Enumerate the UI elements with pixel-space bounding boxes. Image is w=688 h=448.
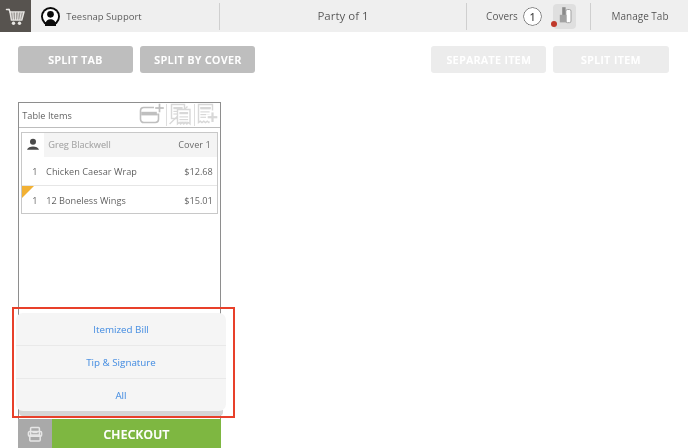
staticText: Manage Tab bbox=[611, 9, 669, 23]
staticText: 1 bbox=[529, 10, 536, 24]
staticText: CHECKOUT bbox=[103, 426, 170, 442]
button[interactable]: 1 bbox=[21, 186, 218, 214]
button[interactable]: 1 bbox=[21, 157, 218, 185]
button[interactable]: Add receipt bbox=[195, 102, 221, 128]
button[interactable]: SPLIT ITEM bbox=[553, 46, 669, 73]
button[interactable]: Covers bbox=[467, 0, 542, 32]
button[interactable]: All bbox=[16, 379, 226, 411]
button[interactable]: Itemized Bill bbox=[16, 313, 226, 345]
staticText: Table Items bbox=[22, 109, 72, 122]
button[interactable]: SPLIT BY COVER bbox=[140, 46, 255, 73]
button[interactable]: Greg Blackwell bbox=[21, 132, 218, 157]
staticText: Covers bbox=[486, 9, 518, 23]
button[interactable]: SEPARATE ITEM bbox=[431, 46, 546, 73]
staticText: 12 Boneless Wings bbox=[46, 194, 126, 207]
button[interactable]: Tip & Signature bbox=[16, 346, 226, 378]
staticText: All bbox=[115, 389, 127, 402]
button[interactable]: Add card bbox=[138, 102, 166, 128]
staticText: $12.68 bbox=[184, 165, 213, 178]
button[interactable]: Cart bbox=[0, 0, 31, 32]
button[interactable]: Manage Tab bbox=[591, 0, 688, 32]
button[interactable]: Split receipt bbox=[167, 102, 194, 128]
staticText: Party of 1 bbox=[317, 8, 369, 24]
staticText: SPLIT ITEM bbox=[581, 53, 641, 67]
button[interactable]: SPLIT TAB bbox=[18, 46, 133, 73]
button[interactable]: Print bbox=[18, 419, 52, 448]
staticText: 1 bbox=[32, 165, 38, 178]
button[interactable]: Split check bbox=[551, 3, 577, 29]
staticText: SPLIT TAB bbox=[48, 53, 103, 67]
staticText: Chicken Caesar Wrap bbox=[46, 165, 137, 178]
staticText: SPLIT BY COVER bbox=[154, 53, 242, 67]
staticText: Cover 1 bbox=[178, 138, 211, 151]
staticText: Itemized Bill bbox=[93, 323, 149, 336]
staticText: Greg Blackwell bbox=[48, 138, 111, 151]
staticText: $15.01 bbox=[184, 194, 213, 207]
staticText: 1 bbox=[32, 194, 38, 207]
staticText: SEPARATE ITEM bbox=[446, 53, 532, 67]
staticText: Teesnap Support bbox=[66, 10, 142, 23]
button[interactable]: CHECKOUT bbox=[52, 419, 221, 448]
button[interactable]: Teesnap Support bbox=[31, 0, 219, 32]
staticText: Tip & Signature bbox=[86, 356, 156, 369]
